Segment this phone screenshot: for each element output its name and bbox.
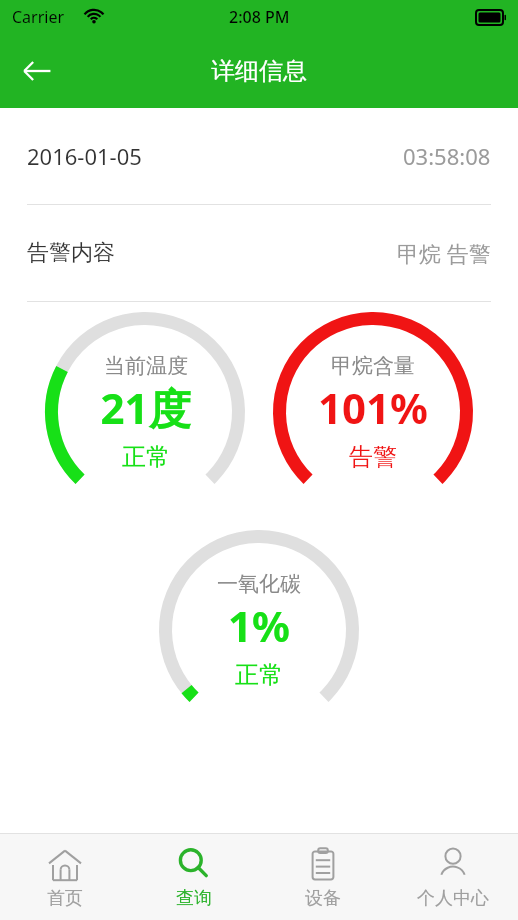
staticText: 告警内容 — [27, 239, 115, 267]
staticText: Carrier — [12, 6, 65, 28]
button[interactable]: 查询 — [129, 834, 258, 920]
button[interactable]: 甲烷含量 — [269, 308, 477, 516]
staticText: 21度 — [100, 379, 191, 436]
button[interactable]: 首页 — [0, 834, 129, 920]
staticText: 一氧化碳 — [217, 571, 301, 597]
staticText: 详细信息 — [211, 56, 307, 86]
staticText: 告警 — [349, 442, 397, 472]
staticText: 正常 — [235, 660, 283, 690]
button[interactable]: Back — [8, 42, 66, 100]
button[interactable]: 2016-01-05 — [0, 108, 518, 204]
staticText: 1% — [228, 597, 290, 654]
staticText: 正常 — [122, 442, 170, 472]
button[interactable]: 一氧化碳 — [155, 526, 363, 734]
staticText: 当前温度 — [104, 353, 188, 379]
staticText: 甲烷 告警 — [397, 238, 491, 268]
staticText: 查询 — [176, 887, 212, 910]
staticText: 2:08 PM — [229, 6, 290, 28]
staticText: 2016-01-05 — [27, 141, 142, 171]
staticText: 设备 — [305, 887, 341, 910]
staticText: 101% — [318, 379, 428, 436]
button[interactable]: 告警内容 — [0, 205, 518, 301]
staticText: 个人中心 — [417, 887, 489, 910]
button[interactable]: 设备 — [258, 834, 388, 920]
staticText: 甲烷含量 — [331, 353, 415, 379]
staticText: 03:58:08 — [403, 141, 491, 171]
staticText: 首页 — [47, 887, 83, 910]
button[interactable]: 当前温度 — [41, 308, 249, 516]
button[interactable]: 个人中心 — [388, 834, 518, 920]
